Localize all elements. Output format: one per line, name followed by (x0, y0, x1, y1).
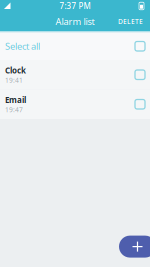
staticText: DELETE (118, 17, 143, 26)
button[interactable]: Clock (0, 60, 150, 89)
button[interactable]: Add alarm (119, 236, 150, 258)
staticText: 19:47 (5, 105, 23, 114)
button[interactable]: Select all (0, 32, 150, 60)
staticText: 7:37 PM (59, 1, 90, 11)
staticText: 19:41 (5, 76, 23, 84)
button[interactable]: DELETE (114, 12, 147, 31)
staticText: Clock (5, 65, 26, 76)
staticText: Email (5, 94, 26, 105)
staticText: Alarm list (55, 15, 94, 28)
button[interactable]: Email (0, 89, 150, 119)
staticText: Select all (5, 40, 40, 52)
